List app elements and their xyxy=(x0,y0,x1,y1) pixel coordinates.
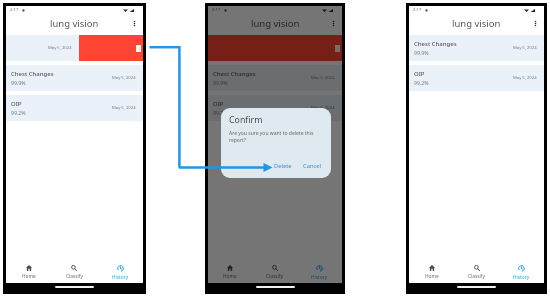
staticText: May 5, 2024 xyxy=(513,45,537,51)
staticText: Chest Changes xyxy=(414,40,457,48)
staticText: History xyxy=(112,274,129,281)
staticText: lung vision xyxy=(50,17,99,30)
staticText: OIP xyxy=(414,70,425,78)
staticText: 99.2% xyxy=(11,109,26,116)
button[interactable]: Chest Changes xyxy=(6,65,143,91)
staticText: History xyxy=(513,274,530,281)
button[interactable]: Home xyxy=(208,260,252,283)
staticText: May 5, 2024 xyxy=(513,75,537,81)
staticText: lung vision xyxy=(452,17,501,30)
staticText: 99.9% xyxy=(414,49,429,56)
staticText: lung vision xyxy=(251,17,300,30)
staticText: 2:17 xyxy=(10,7,19,13)
staticText: 2:17 xyxy=(413,7,422,13)
staticText: May 5, 2024 xyxy=(112,75,136,81)
staticText: May 5, 2024 xyxy=(112,105,136,111)
button[interactable]: Home xyxy=(409,260,454,283)
staticText: Confirm xyxy=(229,114,263,126)
button[interactable]: More options xyxy=(530,18,541,29)
staticText: Cancel xyxy=(303,162,322,170)
staticText: May 5, 2024 xyxy=(311,105,335,111)
staticText: Home xyxy=(223,273,237,280)
button[interactable]: History xyxy=(499,260,544,283)
staticText: 99.9% xyxy=(213,79,228,86)
staticText: Home xyxy=(22,273,36,280)
button[interactable]: History xyxy=(97,260,143,283)
button[interactable]: OIP xyxy=(6,95,143,121)
staticText: Chest Changes xyxy=(11,70,54,78)
button[interactable]: History xyxy=(297,260,342,283)
staticText: Classify xyxy=(266,273,283,280)
button[interactable]: Classify xyxy=(252,260,297,283)
button[interactable]: More options xyxy=(129,18,140,29)
staticText: Are you sure you want to delete this rep… xyxy=(229,130,325,143)
button[interactable]: Classify xyxy=(454,260,499,283)
staticText: Home xyxy=(425,273,439,280)
staticText: OIP xyxy=(213,100,224,108)
staticText: Classify xyxy=(66,273,83,280)
staticText: Chest Changes xyxy=(213,70,256,78)
button[interactable]: OIP xyxy=(208,95,342,121)
button[interactable]: More options xyxy=(328,18,339,29)
button[interactable]: Classify xyxy=(51,260,97,283)
staticText: OIP xyxy=(11,100,22,108)
button[interactable]: Cancel xyxy=(300,160,325,172)
staticText: Delete xyxy=(274,162,292,170)
staticText: 2:17 xyxy=(212,7,221,13)
staticText: 99.2% xyxy=(414,79,429,86)
staticText: Classify xyxy=(468,273,485,280)
staticText: History xyxy=(311,274,328,281)
button[interactable]: Home xyxy=(6,260,51,283)
staticText: May 5, 2024 xyxy=(48,45,72,51)
button[interactable]: Delete xyxy=(271,160,295,172)
staticText: 99.9% xyxy=(11,79,26,86)
button[interactable]: OIP xyxy=(409,65,544,91)
button[interactable]: Chest Changes xyxy=(208,65,342,91)
button[interactable]: Chest Changes xyxy=(409,35,544,61)
staticText: 99.2% xyxy=(213,109,228,116)
staticText: May 5, 2024 xyxy=(311,75,335,81)
